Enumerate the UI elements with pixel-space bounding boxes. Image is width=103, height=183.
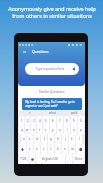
button[interactable]: e bbox=[31, 125, 36, 134]
staticText: Anonymously give and receive help bbox=[8, 5, 96, 12]
staticText: Done bbox=[75, 157, 83, 161]
staticText: n bbox=[64, 147, 66, 151]
staticText: 0 bbox=[80, 119, 82, 123]
staticText: x bbox=[36, 147, 38, 151]
staticText: s bbox=[29, 137, 31, 141]
button[interactable]: 9 bbox=[71, 116, 77, 125]
button[interactable]: z bbox=[27, 144, 33, 154]
staticText: p bbox=[80, 128, 82, 132]
button[interactable]: y bbox=[50, 125, 56, 134]
button[interactable]: 6 bbox=[50, 116, 56, 125]
button[interactable]: 8 bbox=[64, 116, 70, 125]
button[interactable]: 4 bbox=[37, 116, 42, 125]
staticText: u bbox=[59, 128, 61, 132]
button[interactable]: p bbox=[78, 125, 84, 134]
staticText: from others in similar situations bbox=[12, 12, 92, 19]
staticText: v bbox=[50, 147, 52, 151]
button[interactable]: o bbox=[71, 125, 77, 134]
staticText: Type a question here bbox=[36, 67, 65, 71]
staticText: h bbox=[57, 137, 59, 141]
button[interactable]: i bbox=[64, 125, 70, 134]
button[interactable]: h bbox=[55, 134, 61, 144]
button[interactable]: 3 bbox=[31, 116, 36, 125]
button[interactable]: r bbox=[37, 125, 42, 134]
staticText: d bbox=[36, 137, 38, 141]
staticText: z bbox=[29, 147, 31, 151]
button[interactable]: My head is hurting. Do I need to go to u… bbox=[22, 98, 82, 110]
button[interactable]: u bbox=[57, 125, 63, 134]
button[interactable]: ?123 bbox=[19, 154, 28, 164]
staticText: w bbox=[26, 128, 29, 132]
staticText: k bbox=[71, 137, 73, 141]
button[interactable]: x bbox=[34, 144, 40, 154]
staticText: . bbox=[69, 157, 70, 161]
staticText: t bbox=[45, 128, 47, 132]
button[interactable]: 2 bbox=[25, 116, 30, 125]
button[interactable]: j bbox=[62, 134, 68, 144]
staticText: 3 bbox=[33, 119, 35, 123]
button[interactable]: d bbox=[34, 134, 40, 144]
staticText: 5 bbox=[45, 119, 47, 123]
staticText: j bbox=[65, 137, 66, 141]
button[interactable]: a bbox=[21, 134, 26, 144]
staticText: l bbox=[79, 137, 80, 141]
staticText: Questions bbox=[32, 49, 49, 54]
staticText: b bbox=[57, 147, 59, 151]
staticText: i bbox=[67, 128, 68, 132]
button[interactable]: s bbox=[27, 134, 33, 144]
staticText: 8 bbox=[66, 119, 68, 123]
button[interactable]: g bbox=[48, 134, 54, 144]
button[interactable]: w bbox=[25, 125, 30, 134]
staticText: v bbox=[29, 111, 31, 115]
button[interactable]: walk bbox=[63, 110, 85, 116]
button[interactable] bbox=[19, 144, 26, 154]
button[interactable]: f bbox=[41, 134, 47, 144]
button[interactable]: Type a question here bbox=[25, 63, 79, 75]
button[interactable]: Done bbox=[73, 154, 84, 164]
staticText: My head is hurting. Do I need to go to u… bbox=[25, 100, 75, 108]
staticText: g bbox=[50, 137, 52, 141]
staticText: English (US) bbox=[42, 157, 59, 161]
staticText: a bbox=[23, 137, 25, 141]
staticText: o bbox=[73, 128, 75, 132]
button[interactable]: 1 bbox=[19, 116, 24, 125]
button[interactable]: t bbox=[43, 125, 49, 134]
button[interactable]: m bbox=[69, 144, 75, 154]
button[interactable]: v bbox=[48, 144, 54, 154]
button[interactable]: k bbox=[69, 134, 75, 144]
staticText: r bbox=[39, 128, 41, 132]
staticText: m bbox=[71, 147, 74, 151]
staticText: 9 bbox=[73, 119, 75, 123]
button[interactable] bbox=[29, 154, 35, 164]
staticText: Similar Questions bbox=[39, 90, 65, 94]
button[interactable]: 5 bbox=[43, 116, 49, 125]
button[interactable]: n bbox=[62, 144, 68, 154]
button[interactable]: c bbox=[41, 144, 47, 154]
staticText: walk bbox=[71, 111, 78, 115]
button[interactable] bbox=[76, 144, 84, 154]
staticText: 7 bbox=[59, 119, 61, 123]
button[interactable]: v bbox=[18, 110, 41, 116]
button[interactable]: English (US) bbox=[36, 154, 65, 164]
staticText: e bbox=[33, 128, 35, 132]
staticText: 1 bbox=[21, 119, 23, 123]
staticText: 6 bbox=[52, 119, 54, 123]
button[interactable]: q bbox=[19, 125, 24, 134]
button[interactable]: Menu bbox=[21, 48, 28, 55]
staticText: ?123 bbox=[20, 157, 27, 161]
staticText: f bbox=[44, 137, 45, 141]
button[interactable]: b bbox=[55, 144, 61, 154]
button[interactable]: Send bbox=[70, 66, 76, 72]
button[interactable]: 0 bbox=[78, 116, 84, 125]
staticText: what bbox=[49, 111, 56, 115]
button[interactable]: l bbox=[76, 134, 82, 144]
staticText: y bbox=[52, 128, 54, 132]
staticText: 2 bbox=[27, 119, 29, 123]
button[interactable]: what bbox=[41, 110, 63, 116]
staticText: q bbox=[21, 128, 23, 132]
staticText: 4 bbox=[39, 119, 41, 123]
button[interactable]: 7 bbox=[57, 116, 63, 125]
staticText: c bbox=[43, 147, 45, 151]
